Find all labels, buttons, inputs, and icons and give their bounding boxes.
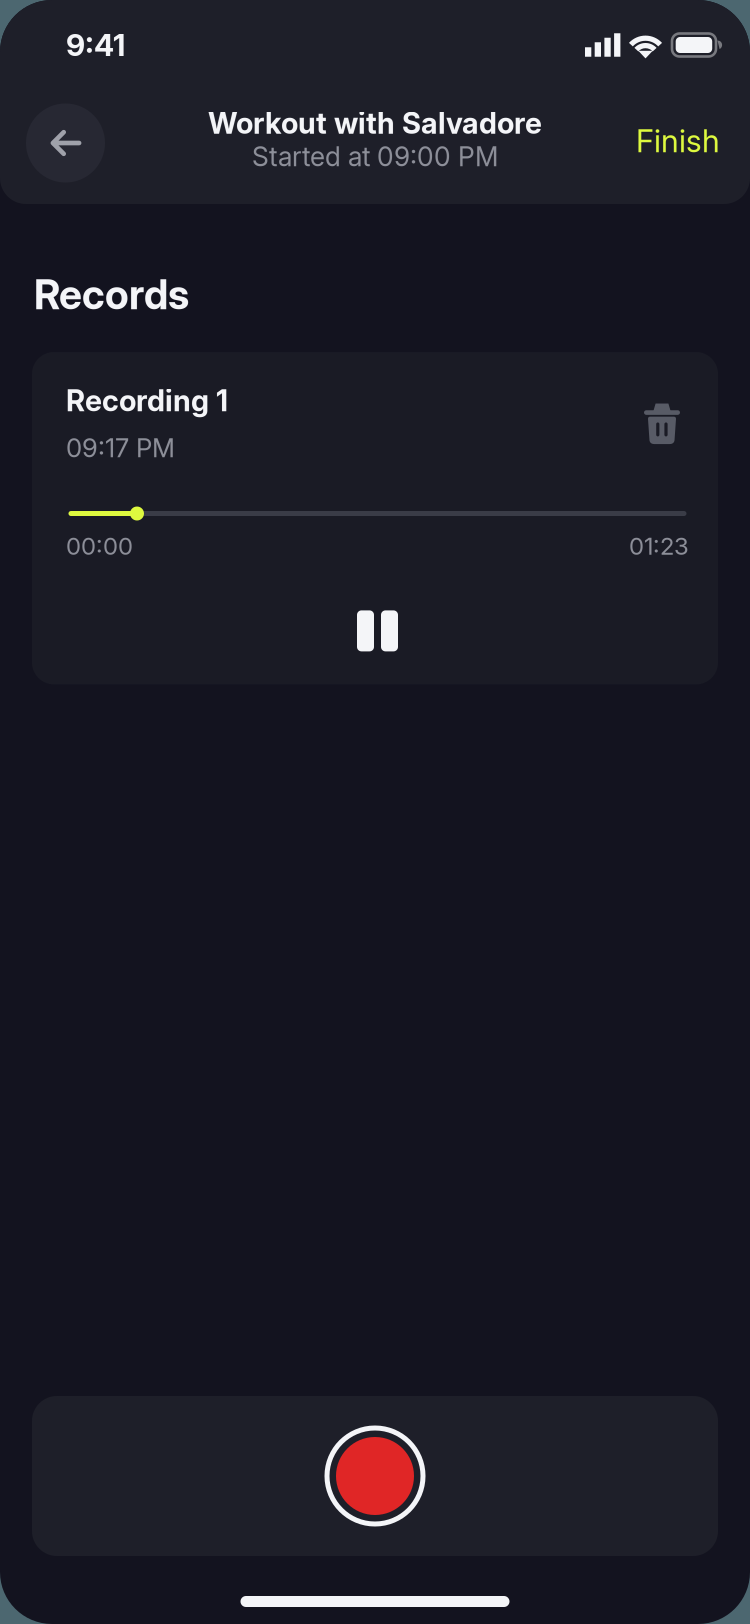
button[interactable]: Pause	[345, 598, 410, 663]
button[interactable]: Record	[32, 1396, 718, 1556]
staticText: Recording 1	[66, 383, 228, 418]
button[interactable]: Delete recording	[644, 383, 689, 444]
staticText: Records	[34, 270, 189, 319]
staticText: 9:41	[66, 27, 125, 63]
staticText: Workout with Salvadore	[208, 105, 542, 141]
staticText: Started at 09:00 PM	[252, 141, 498, 173]
button[interactable]: Finish	[636, 112, 720, 170]
staticText: 09:17 PM	[66, 432, 175, 463]
button[interactable]: Back	[26, 103, 105, 182]
staticText: 01:23	[629, 531, 689, 560]
staticText: 00:00	[66, 531, 133, 560]
staticText: Finish	[636, 122, 720, 160]
